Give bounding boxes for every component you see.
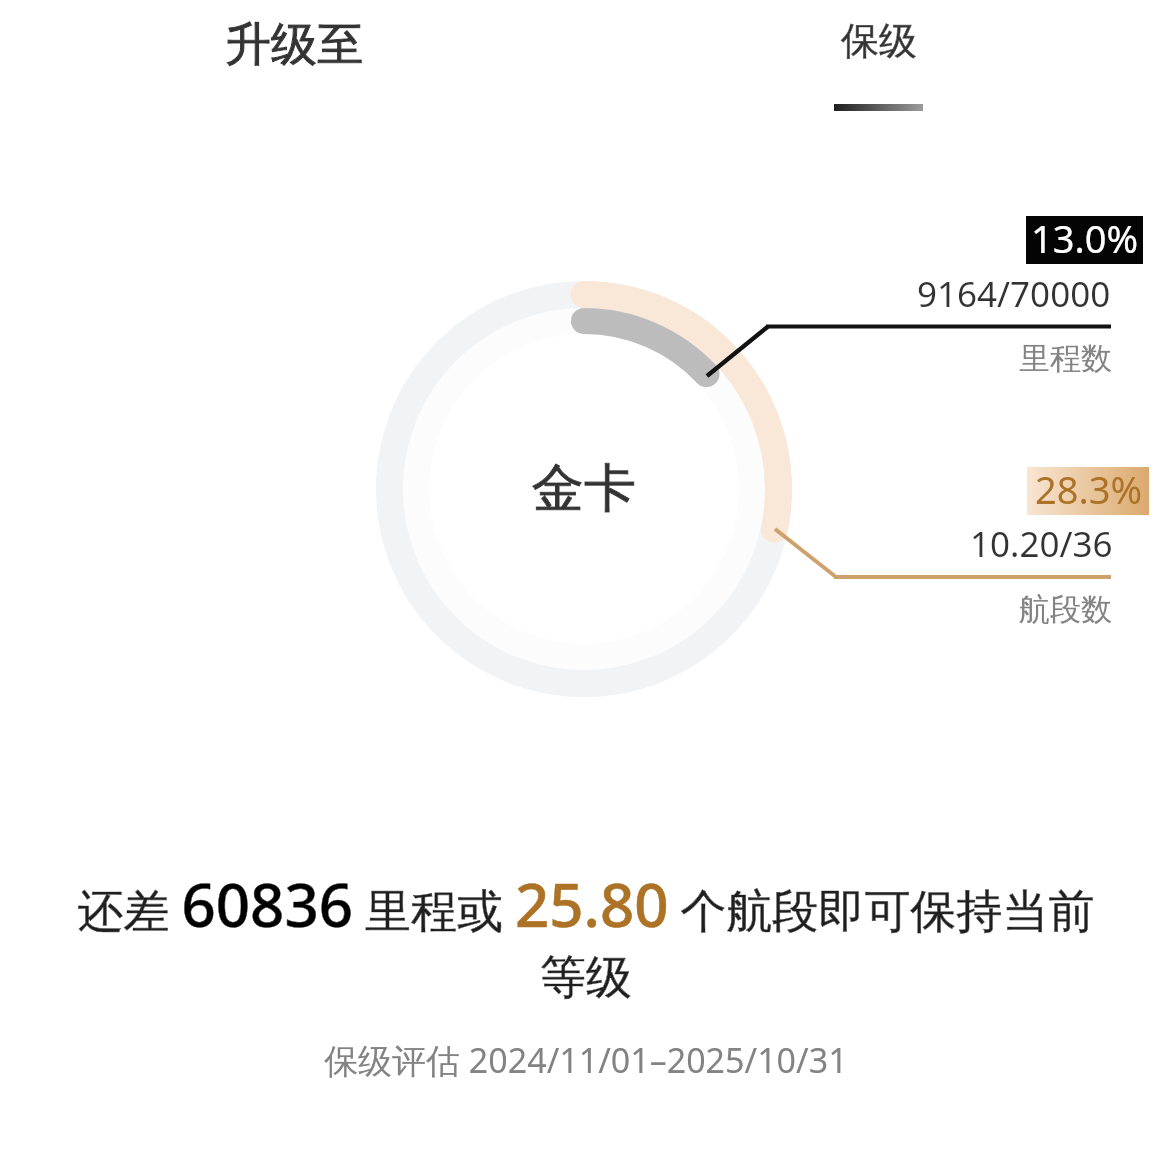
staticText: 金卡	[532, 456, 636, 522]
button[interactable]: 28.3%	[1027, 467, 1149, 515]
staticText: 金卡	[532, 456, 636, 522]
button[interactable]: 保级	[834, 17, 923, 111]
staticText: 10.20/36	[970, 520, 1113, 568]
staticText: 航段数	[1019, 590, 1112, 629]
staticText: 还差 60836 里程或 25.80 个航段即可保持当前 等级	[77, 863, 1095, 1006]
staticText: 升级至	[225, 16, 363, 74]
button[interactable]: 13.0%	[1026, 216, 1143, 264]
staticText: 保级	[841, 17, 917, 65]
button[interactable]: 升级至	[225, 16, 363, 74]
staticText: 28.3%	[1035, 463, 1142, 511]
staticText: 保级	[841, 17, 917, 65]
staticText: 里程数	[1019, 339, 1112, 378]
staticText: 还差 60836 里程或 25.80 个航段即可保持当前 等级	[77, 863, 1095, 1006]
staticText: 保级评估 2024/11/01–2025/10/31	[324, 1037, 848, 1083]
staticText: 13.0%	[1031, 212, 1138, 260]
staticText: 升级至	[225, 16, 363, 74]
staticText: 9164/70000	[917, 270, 1111, 318]
